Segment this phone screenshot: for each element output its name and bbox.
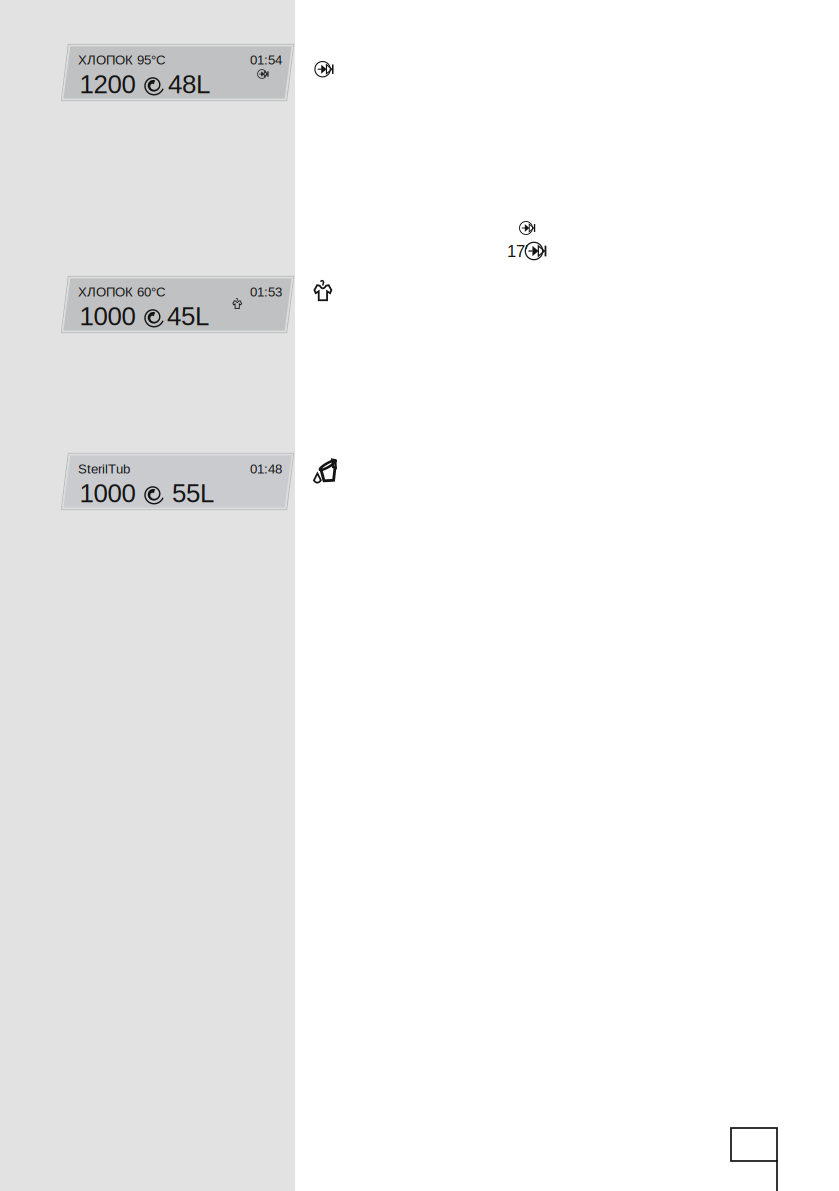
staticText: 45L: [167, 302, 209, 331]
staticText: 48L: [168, 70, 210, 99]
button[interactable]: ХЛОПОК 95°С: [0, 0, 839, 1191]
staticText: 1000: [79, 302, 135, 331]
staticText: 55L: [172, 479, 214, 508]
staticText: ХЛОПОК 60°С: [78, 284, 166, 299]
staticText: 1000: [79, 479, 135, 508]
staticText: 1200: [79, 70, 135, 99]
staticText: 01:53: [250, 284, 282, 299]
staticText: 01:54: [250, 52, 282, 67]
button[interactable]: Synthetics: [0, 0, 839, 1191]
staticText: SterilTub: [78, 461, 130, 476]
button[interactable]: ХЛОПОК 60°С: [0, 0, 839, 1191]
staticText: 01:48: [250, 461, 282, 476]
staticText: ХЛОПОК 95°С: [78, 52, 166, 67]
button[interactable]: Quick wash: [0, 0, 839, 1191]
button[interactable]: SterilTub: [0, 0, 839, 1191]
staticText: 17′: [507, 242, 528, 261]
button[interactable]: Tub clean: [0, 0, 839, 1191]
